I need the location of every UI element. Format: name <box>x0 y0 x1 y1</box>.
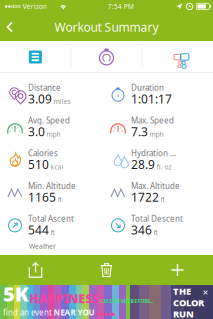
staticText: Max. Speed <box>131 115 174 126</box>
staticText: ft <box>154 228 158 237</box>
button[interactable]: Laps <box>71 41 142 73</box>
staticText: Weather <box>29 242 56 251</box>
staticText: Total Descent <box>131 213 183 224</box>
button[interactable]: Share <box>0 255 71 285</box>
staticText: Duration <box>131 82 164 93</box>
staticText: miles <box>54 97 71 106</box>
staticText: find an event <box>3 307 52 318</box>
staticText: 3.09 <box>28 91 52 107</box>
staticText: 346 <box>131 222 152 238</box>
button[interactable]: Summary <box>0 41 71 73</box>
staticText: 7:54 PM <box>108 2 134 11</box>
staticText: Hydration ... <box>131 148 176 158</box>
staticText: Total Ascent <box>28 213 74 224</box>
staticText: Max. Altitude <box>131 180 180 191</box>
staticText: Distance <box>28 82 61 93</box>
staticText: Calories <box>28 148 58 158</box>
staticText: kcal <box>51 162 64 171</box>
staticText: 510 <box>28 156 49 172</box>
staticText: 1722 <box>131 189 159 205</box>
button[interactable]: Add <box>142 255 213 285</box>
staticText: Min. Altitude <box>28 180 76 191</box>
staticText: NEAR YOU <box>54 307 95 318</box>
staticText: COLOR <box>173 296 204 309</box>
button[interactable]: Delete <box>71 255 142 285</box>
staticText: 1:01:17 <box>131 91 172 107</box>
staticText: ft <box>161 195 165 204</box>
staticText: 28.9 <box>131 156 155 172</box>
staticText: HAPPINESS <box>30 291 100 306</box>
staticText: Avg. Speed <box>28 115 70 126</box>
staticText: fl. oz <box>157 162 172 171</box>
staticText: RUN <box>173 308 194 319</box>
staticText: ▶▶▶▶▶ <box>96 311 116 317</box>
staticText: 1165 <box>28 189 56 205</box>
staticText: 544 <box>28 222 49 238</box>
staticText: 3.0 <box>28 124 45 140</box>
staticText: ft <box>58 195 62 204</box>
staticText: mph <box>150 130 164 139</box>
staticText: Verizon <box>23 2 47 11</box>
staticText: 7.3 <box>131 124 148 140</box>
button[interactable]: Back <box>0 15 23 38</box>
staticText: THE <box>173 285 191 297</box>
button[interactable]: Splits <box>142 41 213 73</box>
staticText: ft <box>51 228 55 237</box>
staticText: LIKE NEVER BEFORE... <box>100 297 153 304</box>
staticText: mph <box>47 130 61 139</box>
staticText: 5K <box>3 280 29 307</box>
staticText: Workout Summary <box>54 19 158 35</box>
button[interactable]: Advertisement: The Color Run 5K <box>0 285 213 319</box>
